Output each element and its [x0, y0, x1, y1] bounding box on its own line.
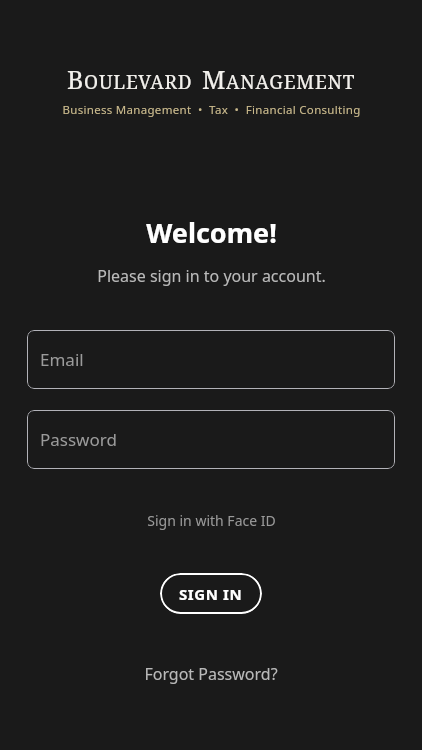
button[interactable]: Sign in with Face ID	[137, 506, 286, 535]
button[interactable]: SIGN IN	[160, 573, 262, 614]
button[interactable]: Password	[27, 410, 395, 469]
staticText: Please sign in to your account.	[97, 265, 326, 287]
staticText: Welcome!	[146, 214, 277, 251]
staticText: Email	[40, 348, 84, 371]
staticText: Sign in with Face ID	[147, 511, 276, 530]
staticText: Business Management • Tax • Financial Co…	[62, 102, 361, 118]
staticText: M	[202, 62, 226, 96]
other: Boulevard Management	[67, 62, 356, 96]
staticText: ANAGEMENT	[226, 69, 356, 95]
button[interactable]: Email	[27, 330, 395, 389]
staticText: Forgot Password?	[144, 663, 278, 685]
staticText: Password	[40, 428, 117, 451]
button[interactable]: Forgot Password?	[134, 658, 288, 690]
staticText: SIGN IN	[179, 584, 243, 604]
staticText: B	[67, 62, 84, 96]
staticText: OULEVARD	[84, 69, 193, 95]
